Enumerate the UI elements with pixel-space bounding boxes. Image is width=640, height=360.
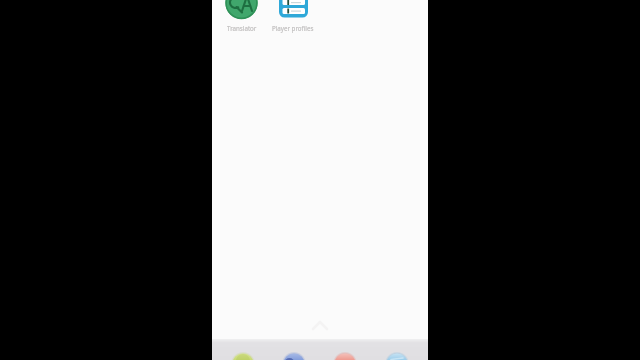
button[interactable] <box>333 339 357 360</box>
button[interactable] <box>385 339 409 360</box>
button[interactable]: Translator <box>222 0 261 33</box>
button[interactable] <box>282 339 306 360</box>
staticText: Translator <box>227 24 257 32</box>
button[interactable]: Player profiles <box>268 0 318 33</box>
staticText: Player profiles <box>272 24 314 32</box>
button[interactable] <box>231 339 255 360</box>
